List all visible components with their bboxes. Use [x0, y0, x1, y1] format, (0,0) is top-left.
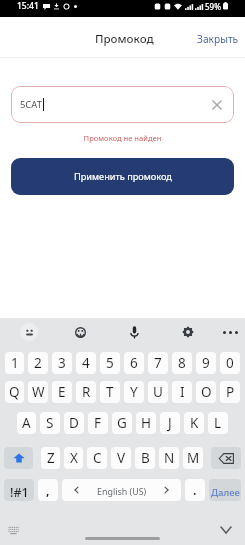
staticText: 8	[178, 354, 186, 372]
staticText: U	[153, 383, 163, 401]
staticText: K	[190, 414, 199, 432]
button[interactable]: 7	[148, 352, 168, 374]
button[interactable]: F	[88, 412, 108, 434]
staticText: 0	[226, 354, 234, 372]
staticText: J	[168, 414, 172, 432]
staticText: Далее	[211, 486, 240, 499]
button[interactable]: O	[196, 381, 216, 403]
button[interactable]: I	[172, 381, 192, 403]
button[interactable]: Настройки	[175, 319, 201, 345]
staticText: .	[193, 482, 197, 498]
staticText: G	[117, 414, 127, 432]
button[interactable]: T	[100, 381, 120, 403]
button[interactable]: J	[160, 412, 180, 434]
staticText: Q	[9, 383, 20, 401]
button[interactable]: Применить промокод	[11, 158, 234, 195]
button[interactable]: Q	[5, 381, 24, 403]
staticText: O	[201, 383, 212, 401]
button[interactable]: G	[112, 412, 132, 434]
staticText: E	[58, 383, 66, 401]
button[interactable]: Далее	[209, 479, 241, 501]
button[interactable]: 0	[220, 352, 240, 374]
staticText: Промокод не найден	[0, 133, 245, 143]
staticText: N	[164, 449, 175, 467]
button[interactable]: A	[17, 412, 36, 434]
button[interactable]: 6	[124, 352, 144, 374]
staticText: Закрыть	[197, 32, 239, 46]
staticText: Промокод	[95, 31, 154, 47]
staticText: Применить промокод	[74, 170, 172, 183]
button[interactable]: Стикеры	[67, 319, 93, 345]
button[interactable]: Ещё	[217, 319, 243, 345]
button[interactable]: H	[136, 412, 156, 434]
staticText: I	[180, 383, 185, 401]
button[interactable]: B	[135, 447, 155, 469]
button[interactable]: English (US)	[62, 479, 181, 501]
button[interactable]: .	[185, 479, 205, 501]
button[interactable]: C	[87, 447, 107, 469]
button[interactable]: 8	[172, 352, 192, 374]
button[interactable]: 4	[76, 352, 96, 374]
staticText: Y	[130, 383, 138, 401]
button[interactable]: 3	[52, 352, 72, 374]
button[interactable]: W	[28, 381, 48, 403]
button[interactable]: ,	[38, 479, 58, 501]
button[interactable]: U	[148, 381, 168, 403]
button[interactable]: V	[111, 447, 131, 469]
staticText: D	[69, 414, 79, 432]
staticText: X	[70, 449, 78, 467]
button[interactable]: Скрыть клавиатуру	[216, 520, 236, 540]
button[interactable]: D	[64, 412, 84, 434]
button[interactable]: M	[183, 447, 203, 469]
staticText: 7	[154, 354, 162, 372]
staticText: !#1	[10, 484, 29, 501]
button[interactable]: E	[52, 381, 72, 403]
staticText: 3	[58, 354, 66, 372]
staticText: ,	[46, 482, 50, 498]
staticText: 5CAT	[20, 98, 42, 111]
button[interactable]: Закрыть	[188, 23, 245, 55]
staticText: M	[187, 449, 200, 467]
staticText: 59%	[205, 1, 221, 12]
button[interactable]: Очистить	[206, 94, 228, 116]
button[interactable]: S	[40, 412, 60, 434]
staticText: W	[32, 383, 45, 401]
staticText: L	[214, 414, 222, 432]
button[interactable]: 5CAT	[11, 86, 234, 123]
staticText: 2	[34, 354, 42, 372]
button[interactable]: K	[184, 412, 204, 434]
button[interactable]: Голосовой ввод	[121, 319, 147, 345]
button[interactable]: Z	[41, 447, 60, 469]
staticText: F	[94, 414, 102, 432]
button[interactable]: Y	[124, 381, 144, 403]
staticText: C	[93, 449, 102, 467]
staticText: H	[141, 414, 152, 432]
button[interactable]: R	[76, 381, 96, 403]
staticText: A	[22, 414, 31, 432]
staticText: 15:41	[17, 0, 39, 12]
staticText: English (US)	[97, 485, 147, 497]
button[interactable]: P	[220, 381, 240, 403]
button[interactable]: Backspace	[211, 447, 241, 469]
button[interactable]: Переключить клавиатуру	[4, 520, 23, 539]
button[interactable]: L	[208, 412, 228, 434]
staticText: R	[82, 383, 91, 401]
button[interactable]: Shift	[4, 447, 33, 469]
button[interactable]: 1	[5, 352, 24, 374]
staticText: B	[141, 449, 150, 467]
button[interactable]: X	[64, 447, 83, 469]
staticText: 1	[11, 354, 19, 372]
staticText: S	[46, 414, 54, 432]
staticText: 5	[106, 354, 114, 372]
button[interactable]: !#1	[4, 479, 34, 501]
button[interactable]: 2	[28, 352, 48, 374]
staticText: P	[226, 383, 235, 401]
button[interactable]: N	[159, 447, 179, 469]
button[interactable]: 9	[196, 352, 216, 374]
button[interactable]: Эмодзи	[16, 319, 42, 345]
staticText: Z	[47, 449, 55, 467]
staticText: 9	[202, 354, 210, 372]
staticText: V	[117, 449, 126, 467]
button[interactable]: 5	[100, 352, 120, 374]
staticText: 4	[82, 354, 90, 372]
